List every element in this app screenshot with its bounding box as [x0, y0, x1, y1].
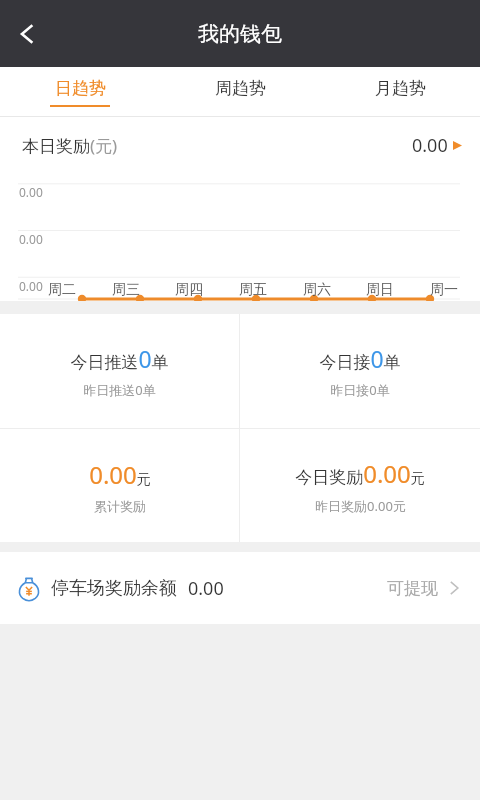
button[interactable]: 今日推送0单 — [0, 314, 239, 428]
staticText: 周二 — [48, 281, 76, 299]
staticText: 0.00 — [19, 278, 43, 294]
staticText: 昨日接0单 — [330, 381, 390, 399]
staticText: 今日奖励0.00元 — [295, 457, 425, 490]
button[interactable]: 今日奖励0.00元 — [240, 429, 480, 542]
staticText: 月趋势 — [375, 78, 426, 99]
staticText: 我的钱包 — [198, 21, 282, 47]
staticText: 周六 — [303, 281, 331, 299]
staticText: 今日推送0单 — [70, 343, 169, 374]
button[interactable]: 本日奖励(元) — [0, 117, 480, 173]
staticText: 周日 — [366, 281, 394, 299]
button[interactable]: 周趋势 — [160, 67, 320, 117]
button[interactable]: 0.00元 — [0, 429, 239, 542]
button[interactable]: 月趋势 — [320, 67, 480, 117]
staticText: 今日接0单 — [319, 343, 401, 374]
staticText: 周三 — [112, 281, 140, 299]
staticText: 昨日推送0单 — [83, 381, 156, 399]
staticText: 可提现 — [387, 578, 438, 599]
button[interactable]: 今日接0单 — [240, 314, 480, 428]
staticText: 0.00 — [412, 133, 448, 158]
staticText: 周一 — [430, 281, 458, 299]
button[interactable]: 停车场奖励余额 — [0, 552, 480, 624]
staticText: 停车场奖励余额 — [51, 577, 177, 600]
staticText: 周四 — [175, 281, 203, 299]
staticText: 0.00 — [19, 231, 43, 247]
staticText: 0.00元 — [89, 458, 151, 491]
staticText: 0.00 — [188, 576, 224, 601]
button[interactable]: 日趋势 — [0, 67, 160, 117]
staticText: 0.00 — [19, 184, 43, 200]
staticText: 日趋势 — [55, 78, 106, 99]
staticText: 昨日奖励0.00元 — [315, 497, 406, 515]
staticText: 本日奖励(元) — [22, 134, 118, 157]
button[interactable]: Back — [0, 7, 54, 61]
staticText: 累计奖励 — [94, 498, 146, 514]
staticText: 周五 — [239, 281, 267, 299]
staticText: 周趋势 — [215, 78, 266, 99]
